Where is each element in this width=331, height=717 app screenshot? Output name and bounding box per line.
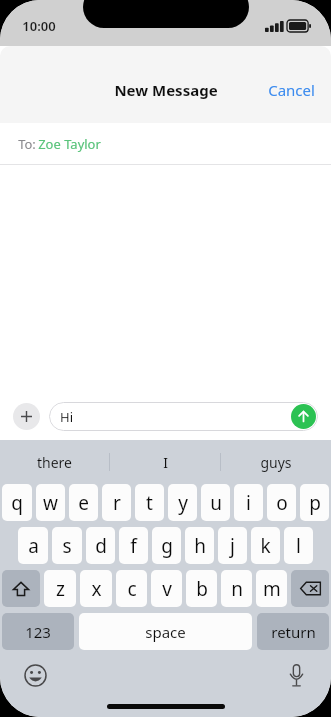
staticText: n xyxy=(231,576,243,602)
button[interactable]: g xyxy=(152,527,181,564)
button[interactable]: y xyxy=(168,484,197,521)
button[interactable]: f xyxy=(119,527,148,564)
button[interactable]: r xyxy=(102,484,131,521)
button[interactable]: k xyxy=(251,527,280,564)
staticText: 123 xyxy=(25,622,51,642)
staticText: x xyxy=(91,576,102,602)
button[interactable]: a xyxy=(18,527,48,564)
staticText: o xyxy=(276,490,288,516)
button[interactable]: Send xyxy=(291,404,316,429)
staticText: c xyxy=(127,576,137,602)
button[interactable]: Emoji xyxy=(22,662,48,688)
button[interactable]: t xyxy=(135,484,164,521)
staticText: To: xyxy=(16,135,38,153)
button[interactable]: Backspace xyxy=(291,570,329,607)
staticText: j xyxy=(230,533,235,559)
button[interactable]: To: xyxy=(0,123,331,164)
button[interactable]: n xyxy=(221,570,252,607)
button[interactable]: I xyxy=(110,440,220,484)
staticText: p xyxy=(309,490,321,516)
staticText: space xyxy=(145,622,186,642)
staticText: v xyxy=(162,576,172,602)
button[interactable]: Add attachment xyxy=(13,403,40,430)
staticText: b xyxy=(196,576,208,602)
button[interactable]: Shift xyxy=(2,570,40,607)
staticText: q xyxy=(11,490,23,516)
staticText: Cancel xyxy=(268,80,315,100)
button[interactable]: c xyxy=(116,570,147,607)
button[interactable]: guys xyxy=(221,440,331,484)
staticText: z xyxy=(56,576,65,602)
button[interactable]: l xyxy=(284,527,313,564)
button[interactable]: e xyxy=(69,484,98,521)
button[interactable]: i xyxy=(234,484,263,521)
staticText: e xyxy=(78,490,89,516)
staticText: return xyxy=(271,622,316,642)
button[interactable]: Hi xyxy=(49,402,318,431)
staticText: l xyxy=(296,533,301,559)
staticText: Zoe Taylor xyxy=(38,135,101,153)
staticText: guys xyxy=(260,453,292,472)
button[interactable]: m xyxy=(256,570,287,607)
staticText: a xyxy=(28,533,39,559)
button[interactable]: space xyxy=(79,613,252,650)
button[interactable]: s xyxy=(52,527,82,564)
staticText: Hi xyxy=(60,408,73,426)
staticText: New Message xyxy=(114,80,218,100)
button[interactable]: u xyxy=(201,484,230,521)
button[interactable]: j xyxy=(218,527,247,564)
button[interactable]: h xyxy=(185,527,214,564)
staticText: 10:00 xyxy=(22,17,56,35)
staticText: s xyxy=(62,533,72,559)
button[interactable]: return xyxy=(257,613,329,650)
button[interactable]: o xyxy=(267,484,296,521)
button[interactable]: v xyxy=(151,570,182,607)
staticText: I xyxy=(163,453,168,472)
button[interactable]: w xyxy=(36,484,65,521)
button[interactable]: p xyxy=(300,484,329,521)
button[interactable]: there xyxy=(0,440,109,484)
staticText: i xyxy=(246,490,251,516)
button[interactable]: b xyxy=(186,570,217,607)
staticText: y xyxy=(178,490,188,516)
staticText: t xyxy=(146,490,153,516)
button[interactable]: 123 xyxy=(2,613,74,650)
staticText: there xyxy=(37,453,72,472)
button[interactable]: d xyxy=(86,527,115,564)
staticText: h xyxy=(194,533,206,559)
staticText: k xyxy=(260,533,271,559)
staticText: d xyxy=(95,533,107,559)
button[interactable]: x xyxy=(80,570,112,607)
staticText: w xyxy=(43,490,58,516)
button[interactable]: Cancel xyxy=(252,72,331,108)
staticText: r xyxy=(113,490,121,516)
button[interactable]: q xyxy=(2,484,32,521)
button[interactable]: z xyxy=(44,570,76,607)
staticText: g xyxy=(161,533,173,559)
button[interactable]: Dictation xyxy=(283,662,309,688)
staticText: f xyxy=(130,533,137,559)
staticText: m xyxy=(263,576,281,602)
staticText: u xyxy=(210,490,222,516)
